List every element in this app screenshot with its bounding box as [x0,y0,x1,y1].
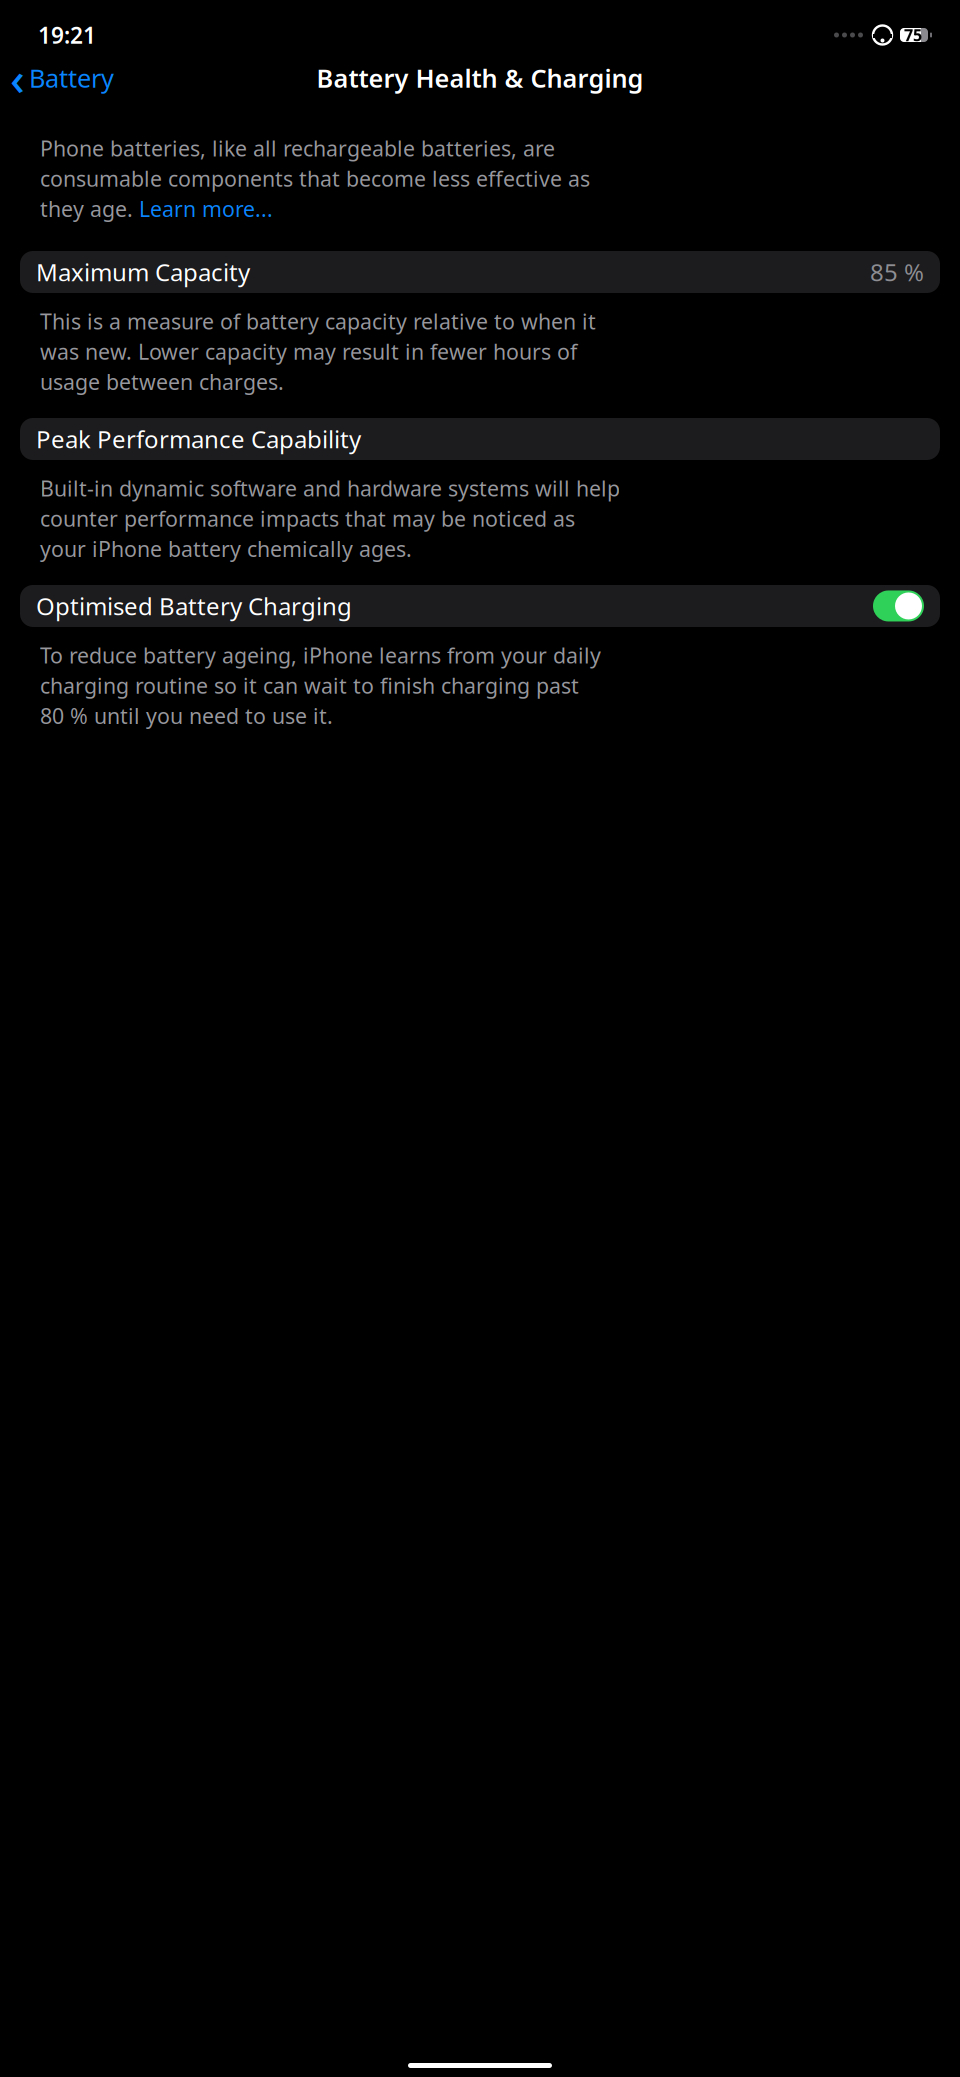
staticText: usage between charges. [40,368,284,396]
staticText: your iPhone battery chemically ages. [40,535,412,563]
staticText: charging routine so it can wait to finis… [40,671,579,700]
staticText: 75 [904,24,922,46]
staticText: ‹ [10,48,25,108]
staticText: Battery [29,61,114,95]
staticText: Optimised Battery Charging [36,590,352,622]
staticText: they age. [40,195,139,223]
staticText: consumable components that become less e… [40,164,590,193]
staticText: To reduce battery ageing, iPhone learns … [40,641,601,669]
staticText: 19:21 [38,20,96,50]
staticText: Learn more... [139,195,273,223]
staticText: was new. Lower capacity may result in fe… [40,337,577,366]
button[interactable]: Optimised Battery Charging [0,585,960,627]
staticText: Peak Performance Capability [36,423,361,455]
staticText: counter performance impacts that may be … [40,504,575,533]
staticText: Battery Health & Charging [316,61,643,95]
button[interactable]: Learn more... [139,195,273,223]
staticText: This is a measure of battery capacity re… [40,307,596,335]
staticText: 80 % until you need to use it. [40,702,333,730]
button[interactable]: Peak Performance Capability [0,418,960,460]
staticText: Phone batteries, like all rechargeable b… [40,134,555,162]
staticText: Maximum Capacity [36,256,250,288]
staticText: 85 % [870,256,924,288]
staticText: Built-in dynamic software and hardware s… [40,474,620,502]
button[interactable]: Maximum Capacity [0,251,960,293]
button[interactable]: ‹ [0,44,124,112]
